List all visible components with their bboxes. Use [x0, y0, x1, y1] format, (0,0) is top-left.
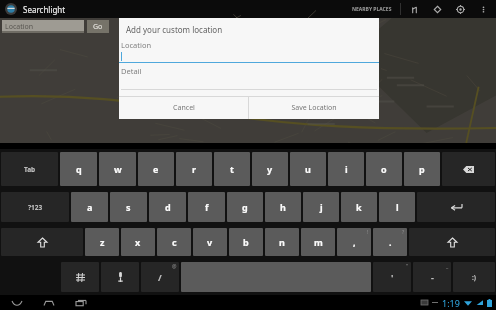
- staticText: e: [153, 163, 159, 175]
- staticText: Save Location: [291, 103, 337, 113]
- staticText: j: [320, 201, 323, 213]
- button[interactable]: Back: [10, 296, 24, 310]
- staticText: ?123: [28, 203, 43, 212]
- button[interactable]: !: [337, 228, 371, 256]
- staticText: m: [314, 236, 323, 248]
- button[interactable]: y: [252, 152, 288, 186]
- button[interactable]: App icon: [4, 2, 18, 16]
- staticText: o: [381, 163, 387, 175]
- button[interactable]: More options: [476, 2, 490, 16]
- button[interactable]: w: [99, 152, 136, 186]
- staticText: n: [279, 236, 285, 248]
- button[interactable]: q: [60, 152, 97, 186]
- button[interactable]: a: [71, 192, 108, 222]
- button[interactable]: Detail: [119, 63, 379, 90]
- button[interactable]: Enter: [417, 192, 495, 222]
- button[interactable]: Mic: [101, 262, 139, 292]
- button[interactable]: My location: [453, 2, 467, 16]
- button[interactable]: r: [176, 152, 212, 186]
- button[interactable]: f: [188, 192, 225, 222]
- button[interactable]: c: [157, 228, 191, 256]
- button[interactable]: d: [149, 192, 186, 222]
- staticText: !: [367, 229, 369, 236]
- staticText: r: [192, 163, 197, 175]
- staticText: Detail: [121, 66, 142, 76]
- button[interactable]: Go: [87, 20, 109, 33]
- staticText: h: [280, 201, 286, 213]
- button[interactable]: o: [366, 152, 402, 186]
- staticText: Add your custom location: [126, 24, 223, 35]
- staticText: Searchlight: [23, 4, 66, 15]
- button[interactable]: Recent apps: [74, 296, 88, 310]
- button[interactable]: l: [379, 192, 415, 222]
- staticText: s: [126, 201, 131, 213]
- staticText: .: [389, 236, 392, 248]
- button[interactable]: ?123: [1, 192, 69, 222]
- button[interactable]: v: [193, 228, 227, 256]
- button[interactable]: j: [303, 192, 339, 222]
- staticText: g: [242, 201, 248, 213]
- button[interactable]: h: [265, 192, 301, 222]
- button[interactable]: b: [229, 228, 263, 256]
- staticText: k: [356, 201, 362, 213]
- staticText: ?: [402, 229, 405, 236]
- button[interactable]: @: [141, 262, 179, 292]
- staticText: Go: [93, 22, 103, 32]
- button[interactable]: x: [121, 228, 155, 256]
- button[interactable]: Settings: [61, 262, 99, 292]
- button[interactable]: Tab: [1, 152, 58, 186]
- button[interactable]: Backspace: [442, 152, 495, 186]
- staticText: y: [267, 163, 273, 175]
- staticText: b: [243, 236, 249, 248]
- staticText: -: [431, 271, 434, 283]
- staticText: Cancel: [173, 103, 195, 113]
- staticText: 1:19: [442, 297, 460, 309]
- button[interactable]: s: [110, 192, 147, 222]
- staticText: i: [345, 163, 348, 175]
- button[interactable]: _: [413, 262, 451, 292]
- staticText: :): [472, 273, 477, 282]
- button[interactable]: ?: [373, 228, 407, 256]
- button[interactable]: n: [265, 228, 299, 256]
- button[interactable]: Navigate: [430, 2, 444, 16]
- button[interactable]: Home: [42, 296, 56, 310]
- staticText: ,: [353, 236, 356, 248]
- button[interactable]: u: [290, 152, 326, 186]
- staticText: a: [87, 201, 93, 213]
- staticText: Location: [121, 40, 152, 50]
- staticText: u: [305, 163, 311, 175]
- button[interactable]: p: [404, 152, 440, 186]
- button[interactable]: i: [328, 152, 364, 186]
- button[interactable]: Directions: [407, 2, 421, 16]
- staticText: /: [158, 271, 162, 283]
- staticText: Tab: [24, 165, 36, 174]
- staticText: f: [205, 201, 209, 213]
- button[interactable]: Shift: [1, 228, 83, 256]
- button[interactable]: :): [453, 262, 495, 292]
- staticText: d: [165, 201, 171, 213]
- staticText: l: [396, 201, 399, 213]
- button[interactable]: NEARBY PLACES: [348, 6, 396, 13]
- staticText: w: [114, 163, 122, 175]
- staticText: z: [100, 236, 105, 248]
- button[interactable]: t: [214, 152, 250, 186]
- staticText: @: [172, 263, 177, 270]
- staticText: Location: [5, 22, 34, 32]
- button[interactable]: m: [301, 228, 335, 256]
- button[interactable]: Shift: [409, 228, 495, 256]
- button[interactable]: z: [85, 228, 119, 256]
- button[interactable]: Cancel: [119, 97, 248, 119]
- button[interactable]: Save Location: [249, 97, 379, 119]
- button[interactable]: ": [373, 262, 411, 292]
- button[interactable]: g: [227, 192, 263, 222]
- button[interactable]: k: [341, 192, 377, 222]
- button[interactable]: Location: [2, 20, 84, 33]
- staticText: NEARBY PLACES: [352, 6, 392, 13]
- button[interactable]: Location: [119, 38, 379, 63]
- staticText: x: [135, 236, 141, 248]
- staticText: v: [207, 236, 213, 248]
- button[interactable]: e: [138, 152, 174, 186]
- staticText: c: [172, 236, 177, 248]
- staticText: ": [406, 263, 409, 270]
